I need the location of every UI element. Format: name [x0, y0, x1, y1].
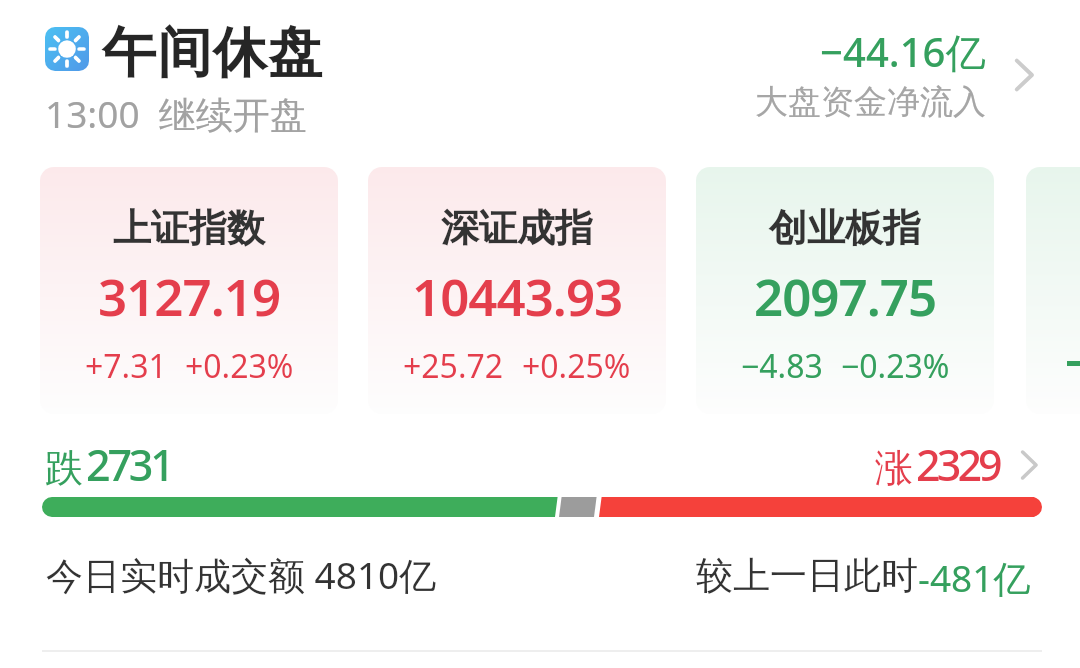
staticText: 较上一日此时: [696, 552, 918, 599]
staticText: +0.23%: [185, 344, 294, 388]
staticText: 2097.75: [754, 261, 937, 330]
staticText: 涨: [875, 444, 913, 492]
staticText: -481亿: [918, 552, 1031, 603]
staticText: 10443.93: [412, 261, 623, 330]
staticText: 2731: [86, 435, 172, 487]
staticText: 午间休盘: [102, 19, 324, 87]
staticText: 创业板指: [769, 204, 921, 252]
staticText: +25.72: [403, 344, 504, 388]
staticText: −0.23%: [841, 344, 950, 388]
button[interactable]: 创业板指: [696, 167, 994, 414]
button[interactable]: 深证成指: [368, 167, 666, 414]
staticText: 3127.19: [98, 261, 281, 330]
staticText: 深证成指: [441, 204, 593, 252]
staticText: 2329: [916, 435, 999, 487]
staticText: 13:00 继续开盘: [45, 88, 307, 139]
button[interactable]: 涨: [874, 440, 1046, 492]
other: View capital flow details: [1006, 55, 1042, 95]
staticText: 今日实时成交额 4810亿: [46, 549, 437, 600]
staticText: −4.83: [741, 344, 823, 388]
staticText: +0.25%: [522, 344, 631, 388]
button[interactable]: [1026, 167, 1080, 414]
button[interactable]: −44.16亿: [620, 14, 1044, 126]
staticText: +7.31: [85, 344, 167, 388]
other: View advancers and decliners: [1013, 447, 1045, 483]
button[interactable]: 上证指数: [40, 167, 338, 414]
button[interactable]: 午间休盘: [34, 14, 394, 138]
staticText: 大盘资金净流入: [755, 81, 986, 123]
staticText: −44.16亿: [820, 24, 986, 79]
staticText: 跌: [45, 444, 83, 492]
staticText: 上证指数: [113, 204, 265, 252]
button[interactable]: 跌: [44, 440, 174, 492]
